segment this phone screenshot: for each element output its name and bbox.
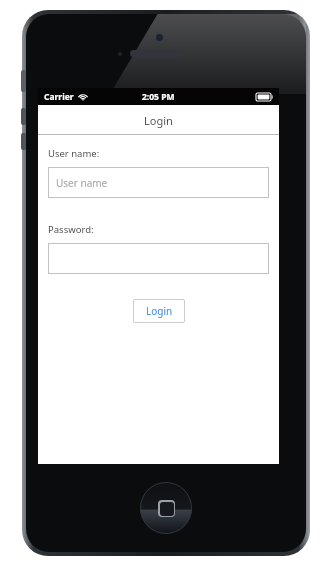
- staticText: Password:: [48, 223, 94, 236]
- button[interactable]: User name: [48, 167, 269, 198]
- button[interactable]: Login: [133, 299, 185, 323]
- staticText: User name:: [48, 147, 100, 160]
- button[interactable]: [48, 243, 269, 274]
- staticText: User name: [56, 176, 108, 190]
- staticText: Login: [146, 304, 173, 318]
- staticText: Login: [144, 113, 173, 128]
- staticText: Carrier: [44, 91, 74, 103]
- staticText: 2:05 PM: [142, 91, 175, 103]
